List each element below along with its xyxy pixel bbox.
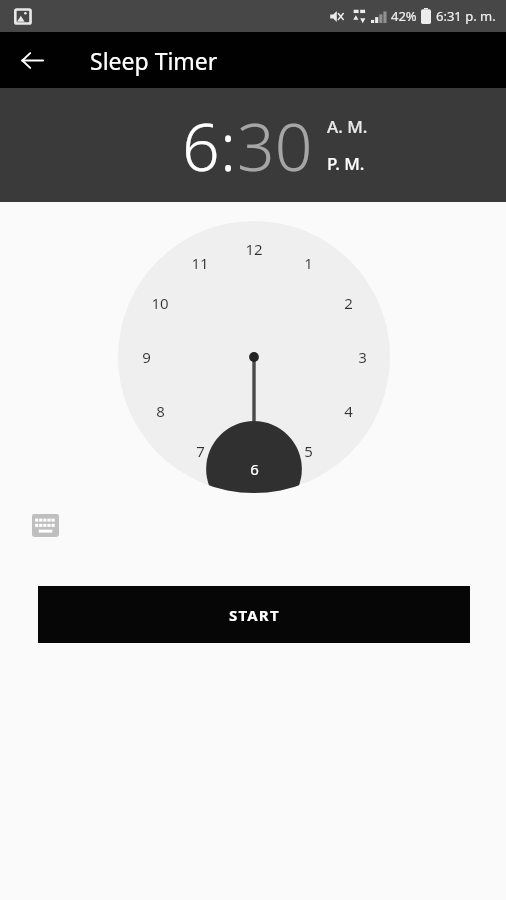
staticText: 11 <box>191 253 209 273</box>
staticText: 6 <box>250 459 259 479</box>
staticText: 42% <box>391 7 417 25</box>
staticText: 10 <box>151 293 169 313</box>
button[interactable]: 6 <box>182 100 220 190</box>
staticText: 4 <box>344 401 353 421</box>
staticText: : <box>220 100 237 190</box>
button[interactable]: Hour picker <box>118 221 390 493</box>
staticText: 3 <box>358 347 367 367</box>
staticText: 9 <box>142 347 151 367</box>
button[interactable]: 30 <box>237 100 313 190</box>
button[interactable]: Back <box>8 36 56 84</box>
staticText: 8 <box>156 401 165 421</box>
staticText: 7 <box>196 441 205 461</box>
staticText: 5 <box>304 441 313 461</box>
staticText: 2 <box>344 293 353 313</box>
staticText: Sleep Timer <box>90 45 218 76</box>
button[interactable]: P. M. <box>327 152 365 175</box>
staticText: START <box>229 605 280 625</box>
button[interactable]: START <box>38 586 470 643</box>
staticText: 1 <box>304 253 313 273</box>
staticText: 12 <box>245 239 263 259</box>
button[interactable]: A. M. <box>327 115 368 138</box>
button[interactable]: Switch to keyboard input <box>26 508 64 542</box>
staticText: 6:31 p. m. <box>436 7 496 25</box>
